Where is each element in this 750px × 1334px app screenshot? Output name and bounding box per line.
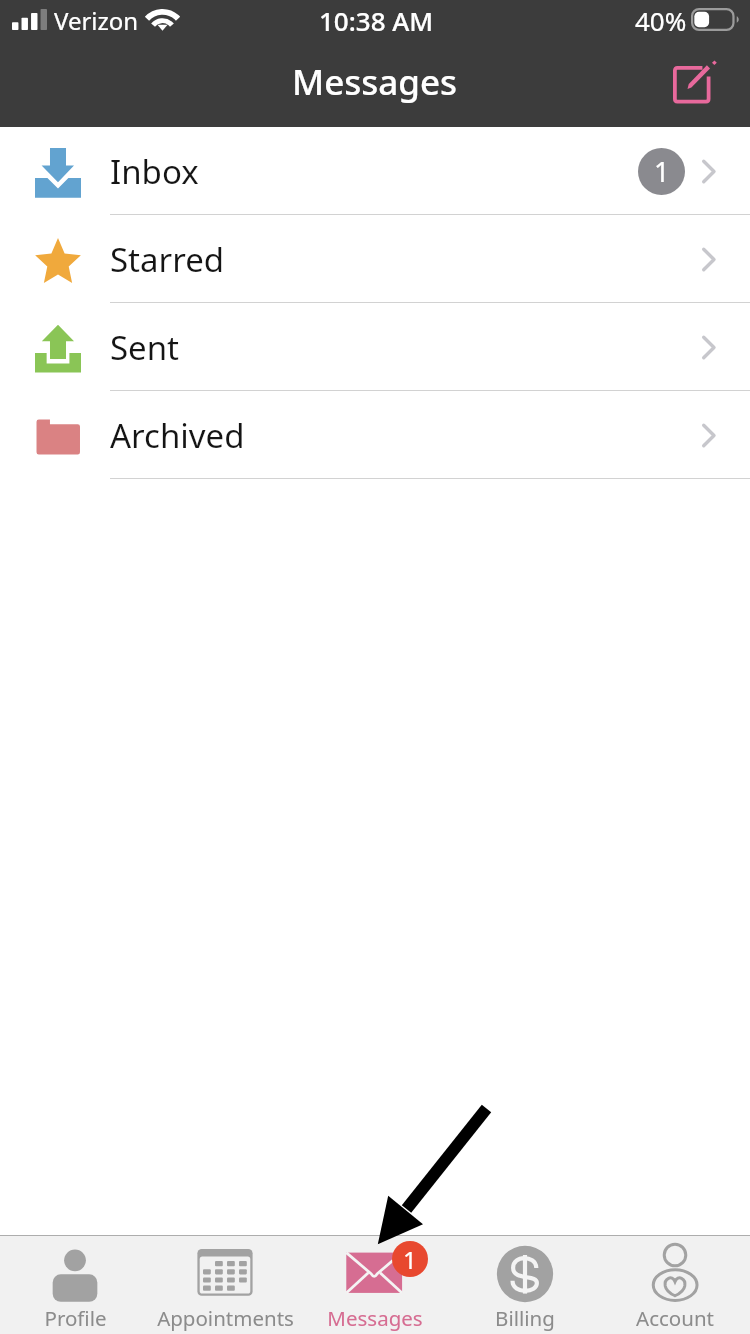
staticText: Archived <box>110 413 245 458</box>
button[interactable]: Compose new message <box>663 48 729 114</box>
button[interactable]: Sent <box>0 303 750 391</box>
button[interactable]: Account <box>600 1235 750 1334</box>
staticText: Account <box>636 1304 714 1332</box>
staticText: Sent <box>110 325 180 370</box>
staticText: Messages <box>292 58 458 106</box>
staticText: 40% <box>635 3 687 38</box>
staticText: Inbox <box>110 149 199 194</box>
button[interactable]: Appointments <box>150 1235 300 1334</box>
staticText: Messages <box>327 1304 423 1332</box>
staticText: 1 <box>654 153 670 190</box>
staticText: 1 <box>403 1243 417 1276</box>
button[interactable]: Starred <box>0 215 750 303</box>
staticText: Appointments <box>157 1304 294 1332</box>
button[interactable]: Archived <box>0 391 750 479</box>
button[interactable]: Profile <box>0 1235 150 1334</box>
staticText: Profile <box>44 1304 107 1332</box>
button[interactable]: 1 <box>300 1235 450 1334</box>
button[interactable]: Billing <box>450 1235 600 1334</box>
staticText: Billing <box>495 1304 555 1332</box>
button[interactable]: Inbox <box>0 127 750 215</box>
staticText: Starred <box>110 237 225 282</box>
staticText: Verizon <box>54 4 139 37</box>
staticText: 10:38 AM <box>319 3 434 38</box>
